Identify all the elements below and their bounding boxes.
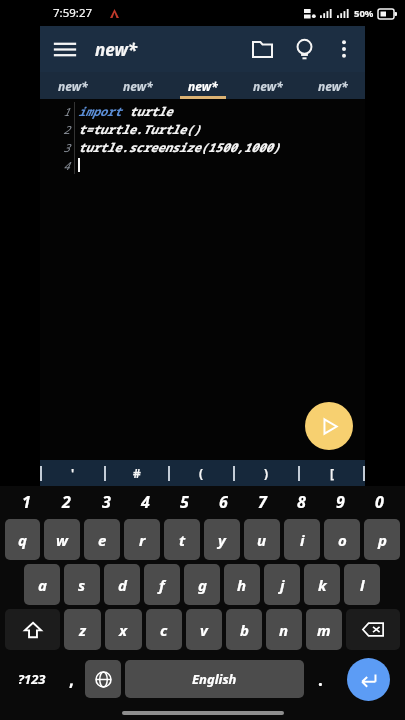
button[interactable]: r (124, 519, 160, 560)
button[interactable]: # (106, 460, 168, 486)
staticText: x (119, 620, 128, 640)
staticText: s (78, 575, 86, 595)
button[interactable]: Enter (347, 658, 390, 701)
button[interactable]: 4 (126, 486, 165, 517)
staticText: new* (123, 78, 153, 94)
button[interactable]: 1 (6, 486, 46, 517)
staticText: q (18, 530, 27, 550)
button[interactable]: w (44, 519, 80, 560)
staticText: new* (253, 78, 283, 94)
staticText: . (318, 668, 323, 691)
staticText: e (98, 530, 107, 550)
staticText: 6 (219, 491, 228, 513)
staticText: g (198, 575, 207, 595)
staticText: 50% (354, 7, 374, 20)
button[interactable]: More options (325, 30, 363, 68)
button[interactable]: h (224, 564, 260, 605)
staticText: 3 (102, 491, 111, 513)
staticText: , (69, 668, 74, 691)
button[interactable]: Open navigation menu (46, 30, 84, 68)
staticText: h (237, 575, 247, 595)
button[interactable]: j (264, 564, 300, 605)
button[interactable]: . (306, 658, 334, 700)
button[interactable]: ) (235, 460, 298, 486)
staticText: a (38, 575, 47, 595)
button[interactable]: c (146, 609, 182, 650)
button[interactable]: 6 (204, 486, 243, 517)
button[interactable]: i (284, 519, 320, 560)
staticText: y (218, 530, 226, 550)
staticText: r (139, 530, 146, 550)
button[interactable]: 7 (243, 486, 282, 517)
button[interactable]: 0 (360, 486, 399, 517)
button[interactable]: a (24, 564, 60, 605)
staticText: j (280, 575, 285, 595)
button[interactable]: ?123 (3, 658, 60, 700)
button[interactable]: new* (40, 72, 105, 99)
staticText: new* (58, 78, 88, 94)
staticText: t (179, 530, 186, 550)
button[interactable]: Shift (5, 609, 60, 650)
button[interactable]: English (125, 660, 304, 698)
staticText: 1 (63, 104, 70, 119)
button[interactable]: Change language (85, 660, 121, 698)
button[interactable]: Open file (241, 28, 283, 70)
button[interactable]: v (186, 609, 222, 650)
button[interactable]: y (204, 519, 240, 560)
staticText: 8 (297, 491, 306, 513)
staticText: i (300, 530, 305, 550)
button[interactable]: k (304, 564, 340, 605)
button[interactable]: new* (170, 72, 235, 99)
button[interactable]: f (144, 564, 180, 605)
button[interactable]: 2 (46, 486, 86, 517)
button[interactable]: 8 (282, 486, 321, 517)
button[interactable]: 9 (321, 486, 360, 517)
button[interactable]: l (344, 564, 380, 605)
button[interactable]: m (306, 609, 342, 650)
button[interactable]: u (244, 519, 280, 560)
button[interactable]: t (164, 519, 200, 560)
staticText: b (240, 620, 249, 640)
button[interactable]: e (84, 519, 120, 560)
staticText: ?123 (18, 670, 46, 688)
button[interactable]: d (104, 564, 140, 605)
button[interactable]: p (364, 519, 400, 560)
staticText: import (78, 103, 129, 119)
staticText: English (192, 670, 237, 688)
button[interactable]: new* (300, 72, 365, 99)
button[interactable]: Backspace (346, 609, 400, 650)
button[interactable]: 5 (165, 486, 204, 517)
button[interactable]: s (64, 564, 100, 605)
button[interactable]: new* (105, 72, 170, 99)
staticText: d (118, 575, 127, 595)
button[interactable]: o (324, 519, 360, 560)
button[interactable]: new* (235, 72, 300, 99)
button[interactable]: z (64, 609, 101, 650)
staticText: 4 (63, 158, 70, 173)
staticText: o (338, 530, 347, 550)
button[interactable]: 3 (86, 486, 126, 517)
staticText: new* (188, 78, 218, 94)
staticText: 0 (375, 491, 384, 513)
button[interactable]: [ (300, 460, 363, 486)
staticText: 2 (63, 122, 70, 137)
staticText: ' (71, 465, 75, 481)
button[interactable]: , (60, 658, 83, 700)
staticText: 3 (63, 140, 70, 155)
button[interactable]: Show hint (283, 28, 325, 70)
button[interactable]: g (184, 564, 220, 605)
button[interactable]: ' (42, 460, 104, 486)
button[interactable]: q (5, 519, 40, 560)
staticText: z (79, 620, 87, 640)
button[interactable]: Run code (305, 402, 353, 450)
button[interactable]: b (226, 609, 262, 650)
button[interactable]: n (266, 609, 302, 650)
staticText: 7:59:27 (53, 5, 93, 21)
button[interactable]: x (105, 609, 142, 650)
button[interactable]: ( (170, 460, 233, 486)
staticText: new* (95, 38, 138, 61)
staticText: ( (199, 465, 204, 481)
staticText: p (378, 530, 387, 550)
staticText: l (360, 575, 365, 595)
staticText: w (56, 530, 68, 550)
